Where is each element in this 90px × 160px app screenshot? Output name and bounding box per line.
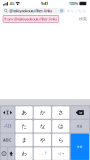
staticText: さ [58,109,63,116]
staticText: ABC [3,137,12,143]
button[interactable]: ま [15,134,33,146]
staticText: ら [58,137,63,143]
staticText: た [21,123,26,130]
button[interactable]: ☆♪→ [52,147,69,160]
button[interactable]: か [34,106,51,119]
staticText: な [40,123,45,130]
staticText: 空白 [77,125,83,128]
button[interactable]: from:@takiyaokoutu filter:links [0,15,90,23]
staticText: ☆♪→ [58,152,64,155]
staticText: 9:41 [41,1,48,6]
button[interactable]: あ [15,106,33,119]
staticText: 検索 [77,145,83,148]
staticText: ま [21,137,26,143]
button[interactable]: ABC [1,134,14,146]
staticText: キャンセル [66,8,86,13]
button[interactable]: Move cursor [1,106,14,119]
staticText: @takiyaokoutu filter-links [9,8,52,13]
button[interactable]: ら [52,134,69,146]
staticText: は [58,123,63,130]
button[interactable]: さ [52,106,69,119]
button[interactable]: は [52,120,69,132]
button[interactable]: キャンセル [65,8,87,14]
button[interactable]: Emoji [1,147,7,160]
button[interactable]: 、。? [34,147,51,160]
button[interactable]: @takiyaokoutu filter-links [2,8,65,14]
staticText: ☆123 [4,124,12,128]
button[interactable]: や [34,134,51,146]
staticText: か [40,109,45,116]
staticText: や [40,137,45,143]
staticText: from:@takiyaokoutu filter:links [4,16,57,21]
button[interactable]: ☆123 [1,120,14,132]
button[interactable]: Dictation [8,147,14,160]
button[interactable]: Delete [71,106,89,119]
staticText: あ [21,109,26,116]
button[interactable]: な [34,120,51,132]
staticText: 検索 [79,16,87,21]
button[interactable]: た [15,120,33,132]
button[interactable]: 検索 [71,134,89,160]
staticText: 100% [69,1,78,6]
staticText: 、。? [39,152,46,155]
staticText: わ [21,150,26,157]
button[interactable]: 空白 [71,120,89,132]
button[interactable]: わ [15,147,33,160]
staticText: 4G [9,1,14,6]
